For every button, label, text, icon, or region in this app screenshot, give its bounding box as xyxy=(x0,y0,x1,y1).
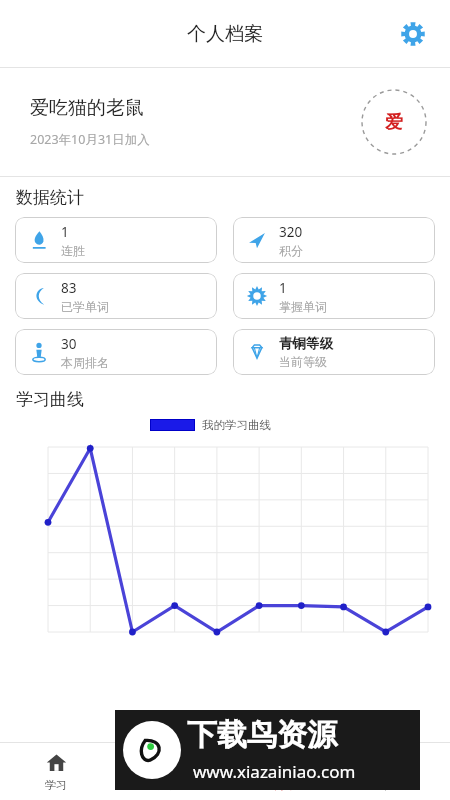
staticText: 个人 xyxy=(270,778,292,792)
staticText: 青铜等级 xyxy=(279,335,333,352)
staticText: 个人档案 xyxy=(187,22,263,46)
staticText: 1 xyxy=(61,223,69,241)
staticText: 本周排名 xyxy=(61,355,109,370)
staticText: 目标 xyxy=(157,778,179,792)
button[interactable]: 学习 xyxy=(0,743,112,800)
staticText: 社组 xyxy=(383,778,405,792)
button[interactable]: 30 xyxy=(15,329,217,375)
staticText: 学习曲线 xyxy=(16,389,84,410)
staticText: 已学单词 xyxy=(61,299,109,314)
staticText: 学习 xyxy=(45,778,67,792)
staticText: 当前等级 xyxy=(279,354,327,369)
staticText: 爱 xyxy=(385,111,403,134)
button[interactable]: 个人 xyxy=(224,743,337,800)
staticText: 1 xyxy=(279,279,287,297)
staticText: www.xiazainiao.com xyxy=(193,760,356,783)
button[interactable]: 目标 xyxy=(112,743,224,800)
button[interactable]: 1 xyxy=(233,273,435,319)
staticText: 2023年10月31日加入 xyxy=(30,131,150,148)
button[interactable]: 社组 xyxy=(337,743,450,800)
button[interactable]: 青铜等级 xyxy=(233,329,435,375)
button[interactable]: 320 xyxy=(233,217,435,263)
staticText: 积分 xyxy=(279,243,303,258)
staticText: 320 xyxy=(279,223,303,241)
staticText: 掌握单词 xyxy=(279,299,327,314)
button[interactable]: 83 xyxy=(15,273,217,319)
button[interactable]: Settings xyxy=(396,17,430,51)
staticText: 30 xyxy=(61,335,77,353)
staticText: 数据统计 xyxy=(16,187,84,208)
staticText: 爱吃猫的老鼠 xyxy=(30,96,144,120)
staticText: 83 xyxy=(61,279,77,297)
staticText: 我的学习曲线 xyxy=(202,418,271,432)
staticText: 下载鸟资源 xyxy=(187,716,337,754)
button[interactable]: 1 xyxy=(15,217,217,263)
staticText: 连胜 xyxy=(61,243,85,258)
button[interactable]: Avatar xyxy=(361,89,427,155)
